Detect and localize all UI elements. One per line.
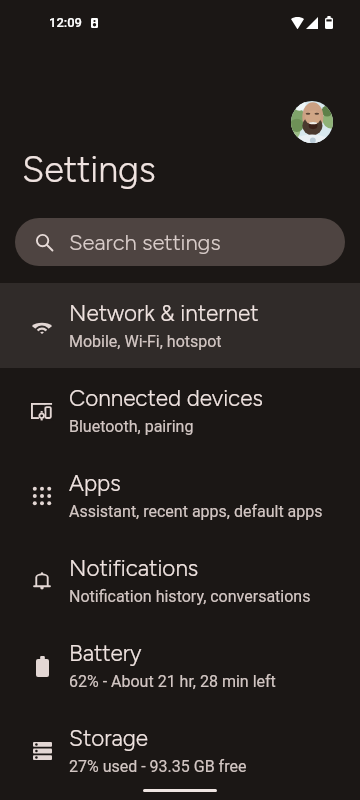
staticText: Network & internet: [69, 300, 259, 327]
button[interactable]: Search settings: [15, 218, 345, 266]
staticText: Battery: [69, 640, 142, 667]
button[interactable]: Notifications: [0, 538, 360, 623]
staticText: Storage: [69, 725, 149, 752]
button[interactable]: Account: [291, 101, 333, 143]
staticText: Notification history, conversations: [69, 587, 311, 606]
staticText: Bluetooth, pairing: [69, 417, 194, 436]
staticText: Mobile, Wi-Fi, hotspot: [69, 332, 222, 351]
button[interactable]: Network & internet: [0, 283, 360, 368]
staticText: Assistant, recent apps, default apps: [69, 502, 323, 521]
button[interactable]: Apps: [0, 453, 360, 538]
staticText: Notifications: [69, 555, 199, 582]
staticText: Connected devices: [69, 385, 263, 412]
staticText: 62% - About 21 hr, 28 min left: [69, 672, 276, 691]
button[interactable]: Storage: [0, 708, 360, 793]
staticText: Search settings: [69, 229, 221, 255]
staticText: Settings: [22, 148, 156, 191]
staticText: 12:09: [49, 15, 83, 30]
button[interactable]: Battery: [0, 623, 360, 708]
staticText: Apps: [69, 470, 121, 497]
staticText: 27% used - 93.35 GB free: [69, 757, 247, 776]
button[interactable]: Connected devices: [0, 368, 360, 453]
